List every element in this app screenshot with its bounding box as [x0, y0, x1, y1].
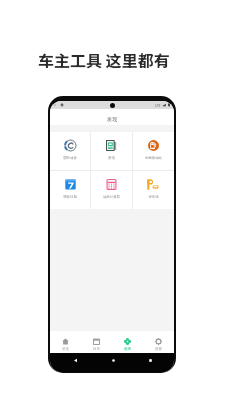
button[interactable]: 资讯	[91, 132, 132, 170]
button[interactable]: 首页	[50, 331, 81, 353]
other: Home	[111, 358, 116, 363]
button[interactable]: 日历	[81, 331, 112, 353]
staticText: 资讯	[108, 156, 115, 160]
button[interactable]: 国际油价	[50, 132, 90, 170]
button[interactable]: 设置	[143, 331, 174, 353]
button[interactable]: 油耗计算器	[91, 171, 132, 209]
staticText: 国际油价	[63, 156, 77, 160]
button[interactable]: 发现	[112, 331, 143, 353]
button[interactable]: 调价日期	[50, 171, 90, 209]
other: Back	[73, 358, 78, 363]
button[interactable]: 停车场	[133, 171, 174, 209]
button[interactable]: 优惠加油站	[133, 132, 174, 170]
staticText: 首页	[62, 347, 69, 351]
staticText: 车主工具 这里都有	[38, 48, 170, 71]
staticText: 优惠加油站	[145, 156, 162, 160]
staticText: 油耗计算器	[103, 195, 120, 199]
staticText: 调价日期	[63, 195, 77, 199]
staticText: 发现	[107, 116, 117, 122]
staticText: LTE	[155, 103, 161, 108]
staticText: 设置	[155, 347, 162, 351]
other: Recents	[148, 358, 153, 363]
staticText: 停车场	[148, 195, 159, 199]
staticText: 日历	[93, 347, 100, 351]
staticText: 发现	[124, 347, 131, 351]
